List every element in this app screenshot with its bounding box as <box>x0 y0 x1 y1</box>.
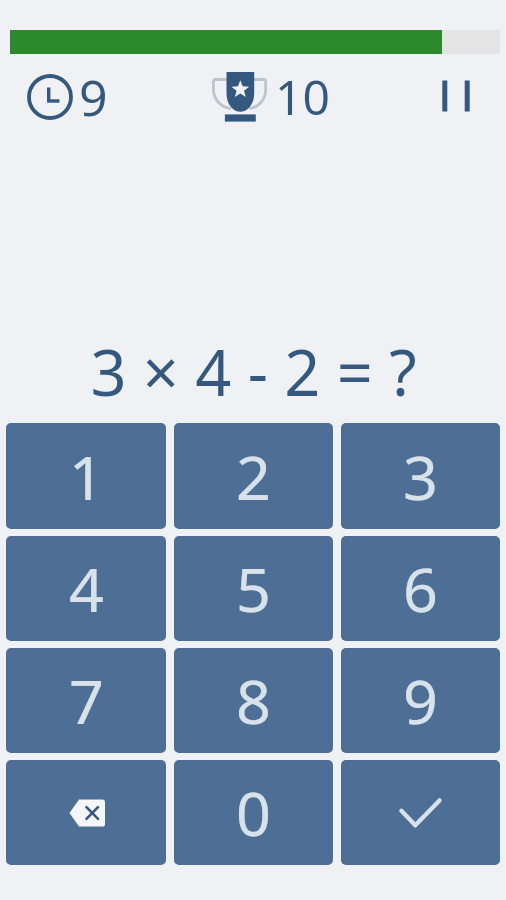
staticText: 2 <box>236 435 271 518</box>
button[interactable]: 9 <box>341 648 500 753</box>
button[interactable]: 3 <box>341 423 500 529</box>
staticText: 5 <box>236 547 271 630</box>
staticText: 0 <box>236 771 271 854</box>
staticText: 10 <box>275 64 330 120</box>
button[interactable]: Pause <box>428 68 484 124</box>
staticText: 3 × 4 - 2 = ? <box>90 329 417 415</box>
staticText: 7 <box>69 659 104 742</box>
button[interactable]: 8 <box>174 648 333 753</box>
button[interactable]: Submit answer <box>341 760 500 865</box>
staticText: 9 <box>79 63 108 119</box>
button[interactable]: 5 <box>174 536 333 641</box>
staticText: 8 <box>236 659 271 742</box>
button[interactable]: Backspace <box>6 760 166 865</box>
staticText: 4 <box>69 547 104 630</box>
staticText: 9 <box>403 659 438 742</box>
button[interactable]: 0 <box>174 760 333 865</box>
button[interactable]: Score <box>205 68 331 124</box>
button[interactable]: 2 <box>174 423 333 529</box>
button[interactable]: Time remaining <box>20 68 112 124</box>
staticText: 1 <box>69 435 104 518</box>
staticText: 3 <box>403 435 438 518</box>
staticText: 6 <box>403 547 438 630</box>
button[interactable]: 1 <box>6 423 166 529</box>
button[interactable]: 6 <box>341 536 500 641</box>
button[interactable]: 4 <box>6 536 166 641</box>
button[interactable]: 7 <box>6 648 166 753</box>
